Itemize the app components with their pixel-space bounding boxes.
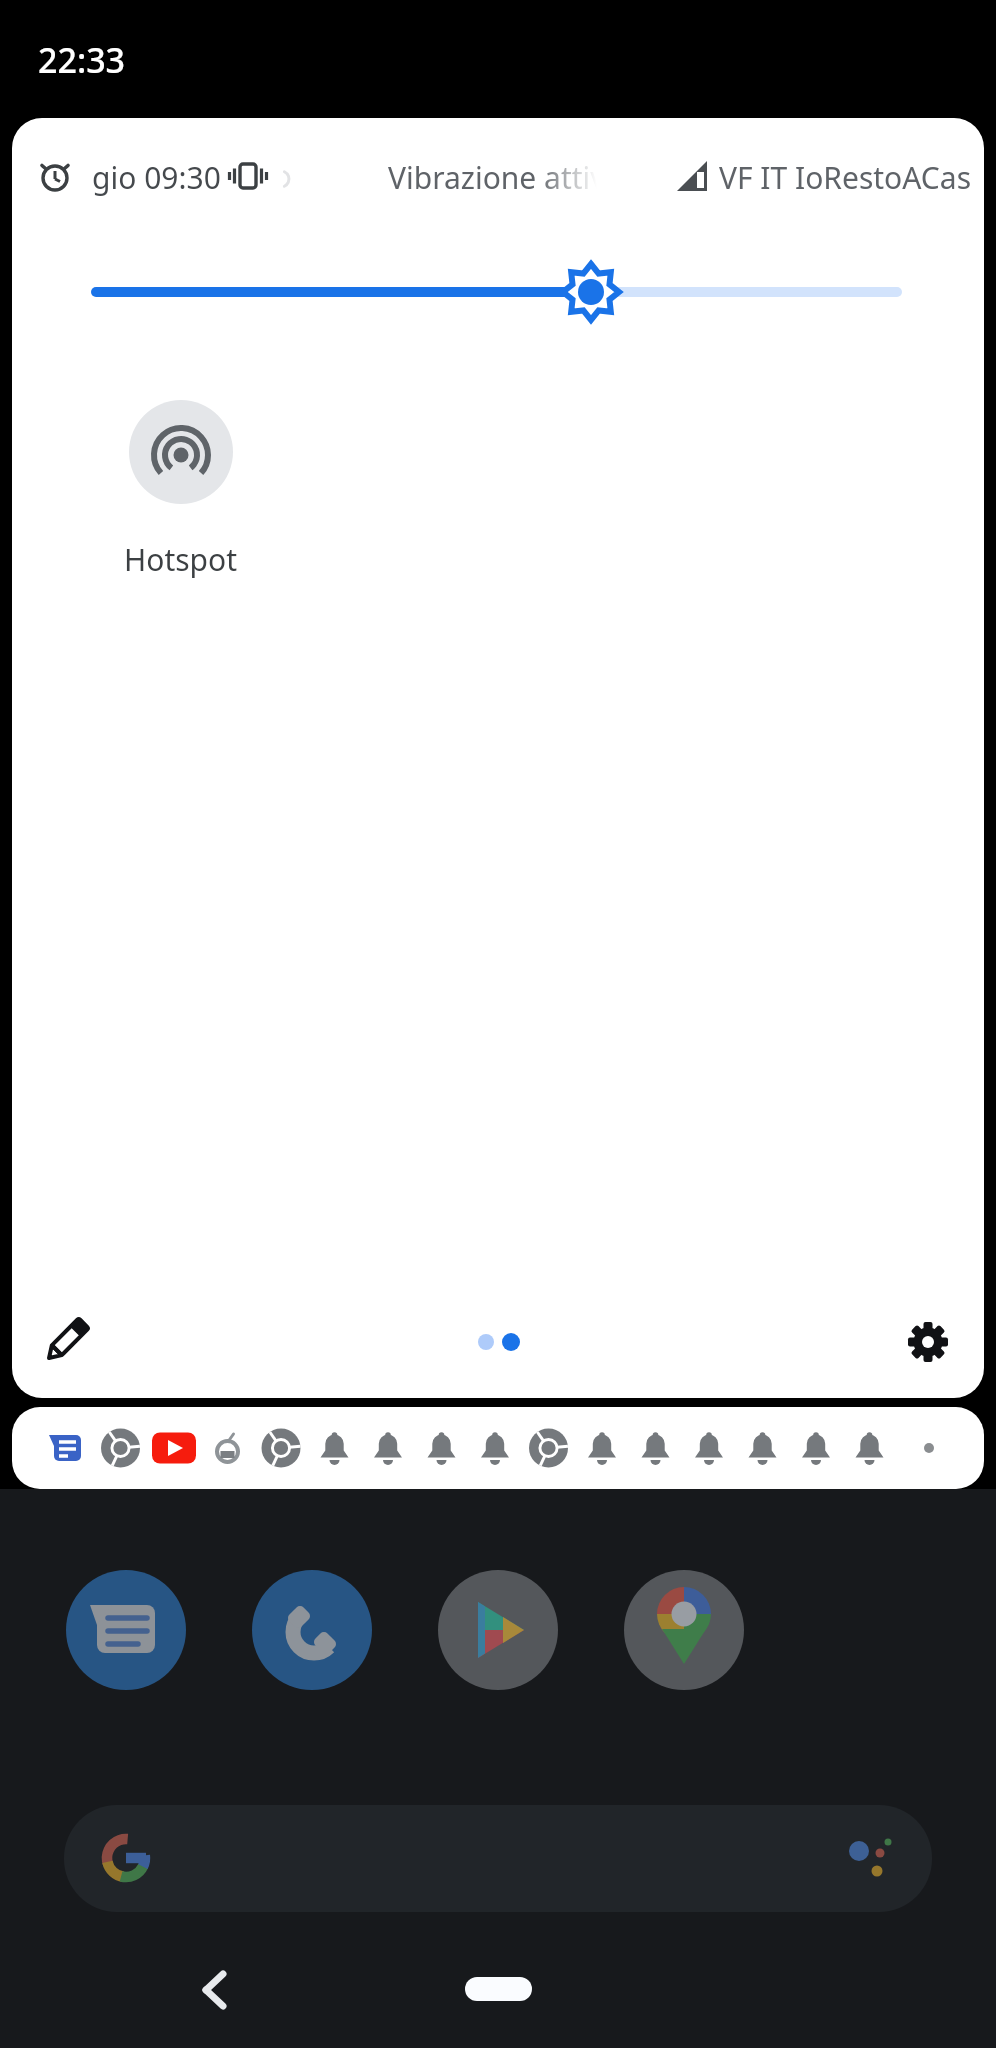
button[interactable]: [438, 1570, 558, 1690]
button[interactable]: [64, 1805, 932, 1912]
staticText: Vibrazione attiv: [388, 157, 606, 198]
button[interactable]: [66, 1570, 186, 1690]
button[interactable]: [465, 1977, 532, 2001]
button[interactable]: [42, 1317, 90, 1365]
button[interactable]: [624, 1570, 744, 1690]
button[interactable]: [252, 1570, 372, 1690]
staticText: Hotspot: [124, 539, 238, 580]
button[interactable]: [190, 1966, 238, 2014]
staticText: VF IT IoRestoACas: [719, 157, 971, 198]
button[interactable]: [129, 400, 233, 504]
button[interactable]: [904, 1318, 952, 1366]
button[interactable]: [12, 1407, 984, 1489]
staticText: gio 09:30: [92, 157, 221, 198]
staticText: 22:33: [38, 37, 126, 83]
